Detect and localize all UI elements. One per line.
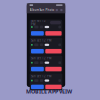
button[interactable] <box>31 85 44 89</box>
staticText: Sun set 12 PM <box>31 19 46 26</box>
button[interactable] <box>31 49 44 53</box>
staticText: Sun set 12 PM <box>31 39 51 42</box>
button[interactable] <box>45 31 62 36</box>
staticText: Sun set 12 PM <box>31 74 51 78</box>
button[interactable] <box>45 49 62 53</box>
button[interactable] <box>31 31 44 36</box>
button[interactable]: More <box>60 9 62 11</box>
staticText: Album Sun Photo <box>29 8 54 12</box>
button[interactable] <box>31 67 44 71</box>
staticText: MOBILE APP VEIW <box>26 88 72 95</box>
button[interactable]: Grid view <box>56 9 58 11</box>
button[interactable] <box>45 67 62 71</box>
staticText: Sun set 12 PM <box>31 56 51 60</box>
button[interactable] <box>45 85 62 89</box>
